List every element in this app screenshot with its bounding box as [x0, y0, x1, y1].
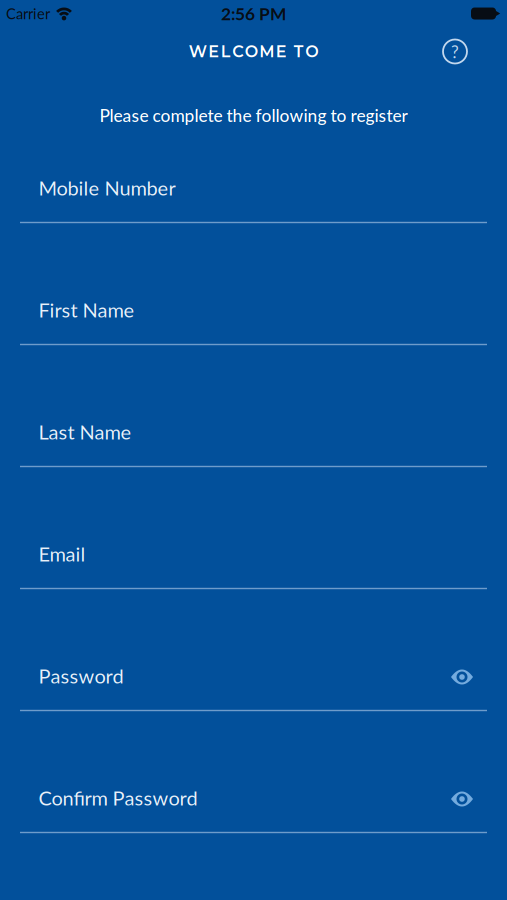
- staticText: Email: [38, 542, 85, 566]
- staticText: First Name: [38, 298, 134, 322]
- button[interactable]: Email: [0, 544, 507, 589]
- staticText: L: [221, 42, 231, 61]
- staticText: Last Name: [38, 420, 131, 444]
- staticText: O: [245, 42, 258, 61]
- button[interactable]: First Name: [0, 300, 507, 345]
- staticText: Mobile Number: [38, 176, 175, 200]
- staticText: O: [305, 42, 318, 61]
- staticText: Password: [38, 664, 123, 688]
- staticText: W: [189, 42, 207, 61]
- button[interactable]: Last Name: [0, 422, 507, 467]
- staticText: 2:56 PM: [221, 3, 286, 24]
- button[interactable]: Help: [441, 37, 469, 65]
- staticText: ?: [451, 41, 459, 62]
- staticText: T: [294, 42, 304, 61]
- button[interactable]: Password: [0, 666, 507, 711]
- staticText: Carrier: [6, 5, 50, 22]
- staticText: E: [208, 42, 219, 61]
- staticText: E: [276, 42, 287, 61]
- staticText: M: [259, 42, 274, 61]
- staticText: Please complete the following to registe…: [99, 105, 407, 126]
- button[interactable]: Show Password: [451, 668, 473, 683]
- button[interactable]: Mobile Number: [0, 178, 507, 223]
- staticText: Confirm Password: [38, 786, 197, 810]
- button[interactable]: Show Confirm Password: [451, 790, 473, 805]
- button[interactable]: Confirm Password: [0, 788, 507, 833]
- staticText: C: [232, 42, 243, 61]
